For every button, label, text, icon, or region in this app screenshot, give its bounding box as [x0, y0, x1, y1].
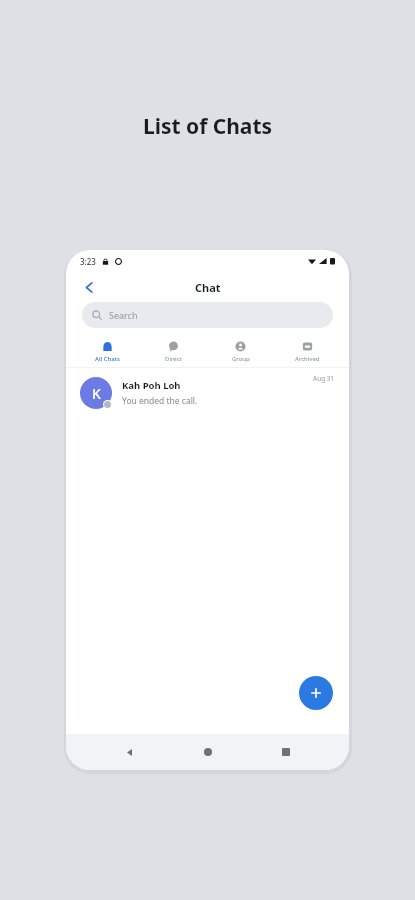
button[interactable]: New chat: [299, 676, 333, 710]
button[interactable]: Direct: [140, 337, 207, 367]
button[interactable]: Back: [114, 737, 144, 767]
staticText: 3:23: [80, 256, 96, 267]
button[interactable]: K: [66, 368, 349, 418]
staticText: Archived: [295, 355, 320, 363]
staticText: Search: [109, 309, 138, 321]
staticText: K: [92, 384, 101, 403]
button[interactable]: Back: [74, 272, 104, 302]
staticText: Direct: [165, 355, 182, 363]
button[interactable]: Search: [82, 302, 333, 328]
button[interactable]: All Chats: [74, 337, 140, 367]
staticText: Group: [232, 355, 250, 363]
staticText: Aug 31: [313, 374, 335, 383]
button[interactable]: Recent apps: [271, 737, 301, 767]
staticText: All Chats: [95, 355, 120, 363]
button[interactable]: Archived: [274, 337, 341, 367]
staticText: You ended the call.: [122, 395, 198, 407]
staticText: Kah Poh Loh: [122, 379, 181, 392]
button[interactable]: Home: [193, 737, 223, 767]
button[interactable]: Group: [207, 337, 274, 367]
staticText: List of Chats: [0, 112, 415, 141]
staticText: Chat: [195, 280, 221, 295]
